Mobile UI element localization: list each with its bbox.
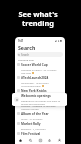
button[interactable]: Album of the Year <box>15 111 65 121</box>
button[interactable]: New York Knicks <box>15 88 65 98</box>
staticText: Trending in Sports · 9,842 posts <box>21 94 57 97</box>
staticText: follow and rediscover. <box>21 102 46 105</box>
button[interactable]: Market Rally <box>15 121 65 131</box>
staticText: Album of the Year <box>21 112 49 116</box>
button[interactable]: Profile <box>56 137 63 144</box>
staticText: Advisory issued <box>21 107 39 110</box>
staticText: Weather · Updated 12 min ago <box>21 104 56 107</box>
button[interactable]: Search <box>27 137 34 144</box>
staticText: Film Festival <box>21 132 41 136</box>
button[interactable]: Webcomic openings <box>12 93 67 106</box>
staticText: Search <box>21 53 30 57</box>
staticText: Severe Weather Alert <box>21 99 54 103</box>
staticText: New York Knicks <box>21 89 47 93</box>
button[interactable]: Explore <box>37 137 44 144</box>
staticText: #TechLaunch2024 <box>21 76 49 80</box>
staticText: Announced today <box>21 84 41 87</box>
button[interactable]: Search <box>17 52 63 57</box>
staticText: Entertainment · 3,504 posts <box>21 137 52 140</box>
staticText: Technology · 18.6K posts <box>21 81 49 84</box>
button[interactable]: Notifications <box>46 137 53 144</box>
staticText: See what's trending <box>18 9 58 28</box>
staticText: Business · 7,120 posts <box>21 127 46 130</box>
staticText: Market Rally <box>21 122 41 126</box>
staticText: Soccer World Cup <box>21 63 48 67</box>
staticText: Live now <box>21 71 31 74</box>
staticText: 9:41 <box>18 39 24 43</box>
button[interactable]: #TechLaunch2024 <box>15 75 65 88</box>
staticText: Trending now <box>18 58 34 61</box>
staticText: Music · 41.2K posts <box>21 117 43 120</box>
button[interactable]: Severe Weather Alert <box>15 98 65 111</box>
staticText: Trending in Sports · 24.1K posts <box>21 68 57 71</box>
staticText: Designed to set trends you want to <box>21 99 61 102</box>
button[interactable]: Home <box>17 137 24 144</box>
staticText: Search <box>18 44 36 51</box>
button[interactable]: Film Festival <box>15 131 65 141</box>
button[interactable]: Soccer World Cup <box>15 62 65 75</box>
staticText: Webcomic openings <box>21 94 51 98</box>
